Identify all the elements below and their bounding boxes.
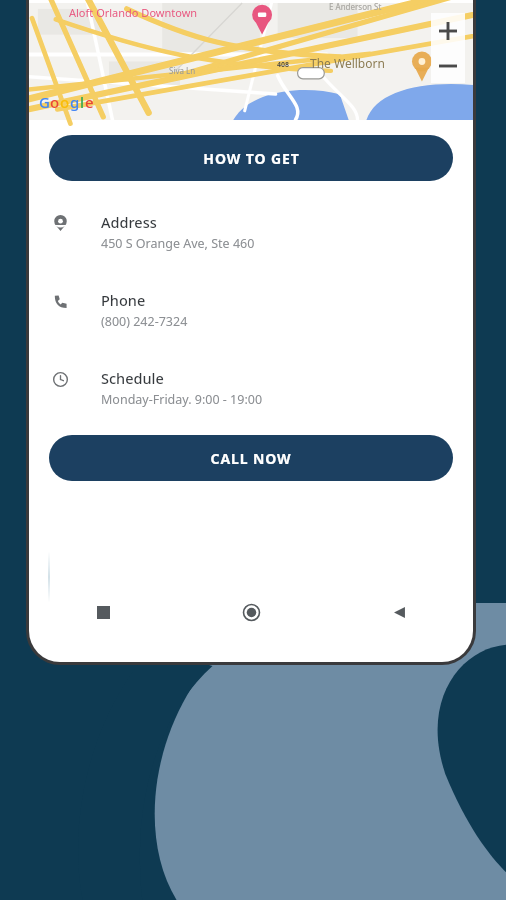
button[interactable]: CALL NOW — [49, 435, 453, 481]
button[interactable]: Phone — [29, 281, 473, 339]
staticText: Schedule — [101, 368, 164, 388]
staticText: 450 S Orange Ave, Ste 460 — [101, 235, 255, 252]
staticText: Aloft Orlando Downtown — [69, 5, 198, 20]
staticText: HOW TO GET — [203, 149, 300, 168]
button[interactable]: Zoom in — [431, 13, 465, 48]
button[interactable]: Address — [29, 203, 473, 261]
staticText: G — [39, 92, 50, 112]
staticText: 408 — [277, 60, 290, 70]
staticText: Address — [101, 212, 157, 232]
staticText: Phone — [101, 290, 146, 310]
staticText: CALL NOW — [210, 449, 292, 468]
button[interactable]: Zoom out — [431, 48, 465, 83]
staticText: o — [60, 92, 70, 112]
staticText: Siva Ln — [169, 65, 196, 76]
staticText: l — [80, 92, 85, 112]
button[interactable]: Back — [325, 592, 473, 632]
staticText: Monday-Friday. 9:00 - 19:00 — [101, 391, 263, 408]
button[interactable]: Home — [177, 592, 325, 632]
staticText: The Wellborn — [310, 55, 385, 71]
staticText: e — [85, 92, 94, 112]
staticText: E Anderson St — [329, 1, 382, 12]
button[interactable]: Schedule — [29, 359, 473, 417]
staticText: o — [50, 92, 60, 112]
button[interactable]: Recent apps — [29, 592, 177, 632]
staticText: (800) 242-7324 — [101, 313, 188, 330]
button[interactable]: HOW TO GET — [49, 135, 453, 181]
staticText: g — [70, 92, 80, 112]
